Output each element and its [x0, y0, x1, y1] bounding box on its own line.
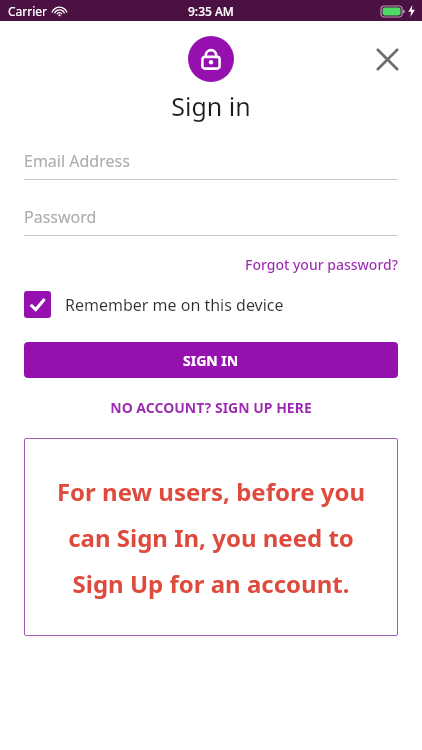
- staticText: Email Address: [24, 150, 130, 172]
- button[interactable]: Password: [24, 206, 398, 236]
- button[interactable]: Remember me on this device: [0, 289, 422, 320]
- staticText: SIGN IN: [183, 351, 239, 370]
- staticText: Password: [24, 206, 97, 228]
- staticText: 9:35 AM: [188, 3, 234, 19]
- staticText: For new users, before you can Sign In, y…: [40, 475, 382, 600]
- button[interactable]: Forgot your password?: [221, 253, 422, 276]
- button[interactable]: NO ACCOUNT? SIGN UP HERE: [0, 395, 422, 420]
- staticText: Remember me on this device: [65, 294, 284, 316]
- button[interactable]: SIGN IN: [24, 342, 398, 378]
- button[interactable]: Lock: [188, 36, 234, 82]
- button[interactable]: Email Address: [24, 150, 398, 180]
- button[interactable]: Close: [370, 42, 404, 76]
- staticText: Carrier: [8, 3, 48, 19]
- staticText: Sign in: [0, 89, 422, 123]
